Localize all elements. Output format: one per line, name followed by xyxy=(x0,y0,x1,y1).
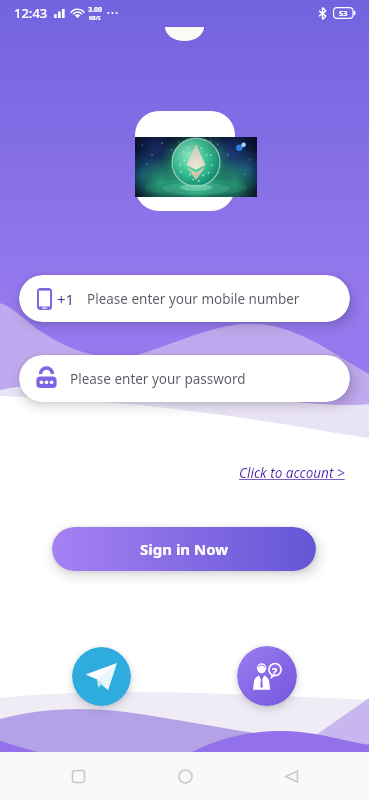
button[interactable]: Click to account > xyxy=(237,460,347,486)
staticText: +1 xyxy=(57,289,75,309)
staticText: Sign in Now xyxy=(140,539,229,559)
staticText: 3.00 xyxy=(88,5,102,15)
staticText: Please enter your mobile number xyxy=(87,290,300,308)
button[interactable]: Customer support xyxy=(237,646,297,706)
staticText: 12:43 xyxy=(14,4,48,22)
staticText: KB/S xyxy=(89,15,101,22)
staticText: 53 xyxy=(339,8,348,18)
button[interactable]: Please enter your password xyxy=(19,355,350,402)
button[interactable]: Back xyxy=(263,752,319,800)
button[interactable]: Home xyxy=(157,752,213,800)
button[interactable]: +1 xyxy=(19,275,350,322)
staticText: Click to account > xyxy=(239,464,345,482)
staticText: ? xyxy=(272,664,278,679)
button[interactable]: Sign in Now xyxy=(52,527,316,571)
button[interactable]: Telegram xyxy=(72,647,131,706)
staticText: Please enter your password xyxy=(70,370,246,388)
button[interactable]: Recent apps xyxy=(50,752,106,800)
